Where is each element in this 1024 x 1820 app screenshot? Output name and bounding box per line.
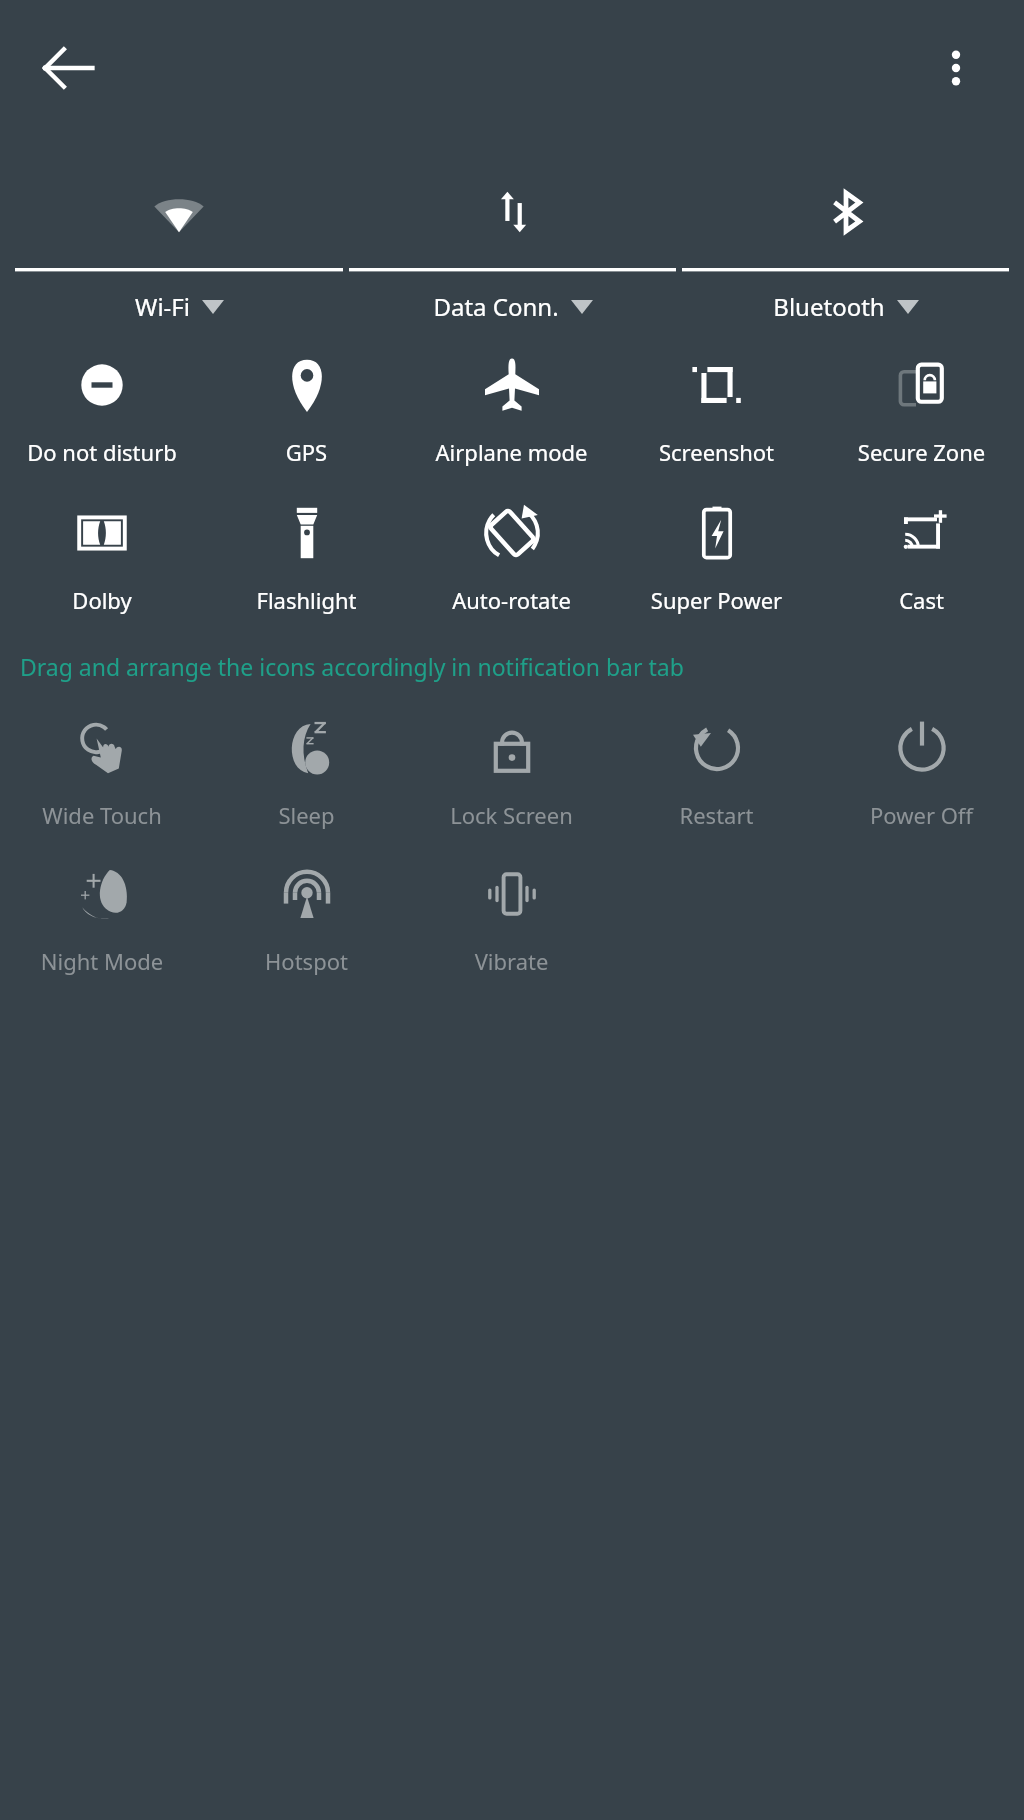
staticText: Wi-Fi: [135, 290, 190, 323]
button[interactable]: Secure Zone: [819, 349, 1024, 467]
button[interactable]: Restart: [614, 712, 819, 830]
staticText: Bluetooth: [773, 290, 885, 323]
staticText: Vibrate: [409, 946, 614, 976]
staticText: Dolby: [0, 585, 204, 615]
button[interactable]: Vibrate: [409, 858, 614, 976]
staticText: Hotspot: [204, 946, 409, 976]
button[interactable]: Dolby: [0, 497, 204, 615]
button[interactable]: Airplane mode: [409, 349, 614, 467]
staticText: Drag and arrange the icons accordingly i…: [20, 651, 1024, 682]
button[interactable]: More options: [910, 22, 1002, 114]
staticText: Power Off: [819, 800, 1024, 830]
staticText: Restart: [614, 800, 819, 830]
button[interactable]: Flashlight: [204, 497, 409, 615]
staticText: Sleep: [204, 800, 409, 830]
button[interactable]: Wide Touch: [0, 712, 204, 830]
staticText: Data Conn.: [433, 290, 559, 323]
button[interactable]: Sleep: [204, 712, 409, 830]
button[interactable]: Hotspot: [204, 858, 409, 976]
button[interactable]: Back: [22, 22, 114, 114]
button[interactable]: Data Conn.: [349, 166, 676, 323]
button[interactable]: Power Off: [819, 712, 1024, 830]
button[interactable]: Lock Screen: [409, 712, 614, 830]
staticText: GPS: [204, 437, 409, 467]
staticText: Secure Zone: [819, 437, 1024, 467]
staticText: Wide Touch: [0, 800, 204, 830]
button[interactable]: Auto-rotate: [409, 497, 614, 615]
button[interactable]: Night Mode: [0, 858, 204, 976]
staticText: Lock Screen: [409, 800, 614, 830]
staticText: Night Mode: [0, 946, 204, 976]
staticText: Cast: [819, 585, 1024, 615]
button[interactable]: GPS: [204, 349, 409, 467]
staticText: Do not disturb: [0, 437, 204, 467]
staticText: Flashlight: [204, 585, 409, 615]
staticText: Screenshot: [614, 437, 819, 467]
staticText: Auto-rotate: [409, 585, 614, 615]
button[interactable]: Bluetooth: [682, 166, 1009, 323]
button[interactable]: Screenshot: [614, 349, 819, 467]
button[interactable]: Do not disturb: [0, 349, 204, 467]
button[interactable]: Super Power: [614, 497, 819, 615]
button[interactable]: Cast: [819, 497, 1024, 615]
button[interactable]: Wi-Fi: [15, 166, 343, 323]
staticText: Super Power: [614, 585, 819, 615]
staticText: Airplane mode: [409, 437, 614, 467]
